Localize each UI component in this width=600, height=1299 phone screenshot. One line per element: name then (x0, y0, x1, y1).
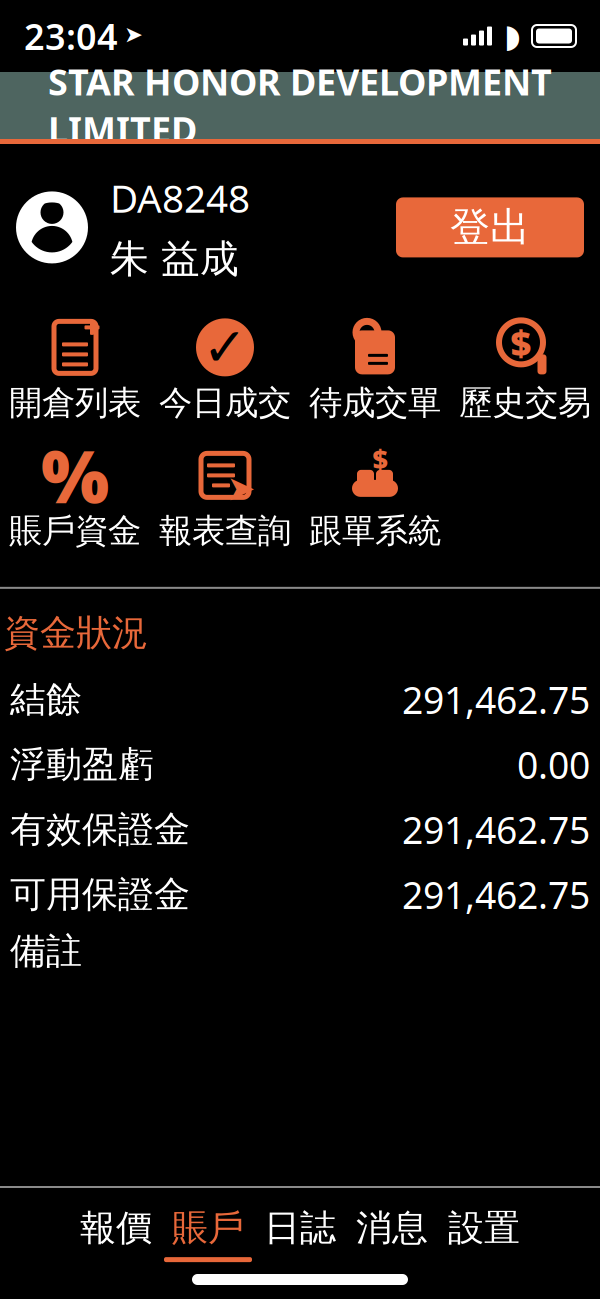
staticText: 開倉列表 (9, 382, 141, 423)
staticText: 報價 (80, 1206, 152, 1250)
staticText: 歷史交易 (459, 382, 591, 423)
staticText: 0.00 (517, 740, 590, 789)
staticText: 291,462.75 (402, 675, 590, 724)
staticText: 登出 (450, 203, 530, 252)
staticText: 資金狀況 (4, 611, 148, 655)
staticText: 今日成交 (159, 382, 291, 423)
button[interactable]: % (0, 435, 150, 563)
button[interactable]: ✓ (150, 307, 300, 435)
staticText: $ (372, 441, 387, 476)
staticText: 浮動盈虧 (10, 742, 154, 787)
staticText: 報表查詢 (159, 510, 291, 551)
staticText: 23:04 (24, 12, 118, 60)
staticText: 消息 (356, 1206, 428, 1250)
staticText: 跟單系統 (309, 510, 441, 551)
staticText: 朱 益成 (110, 235, 239, 283)
button[interactable]: $ (300, 435, 450, 563)
staticText: ➤ (124, 22, 143, 47)
staticText: 賬戶 (172, 1206, 244, 1250)
staticText: DA8248 (110, 172, 250, 223)
staticText: 291,462.75 (402, 805, 590, 854)
staticText: 備註 (10, 929, 82, 973)
staticText: ◗ (504, 18, 521, 54)
staticText: 291,462.75 (402, 870, 590, 919)
button[interactable]: 日誌 (254, 1198, 346, 1270)
staticText: 待成交單 (309, 382, 441, 423)
staticText: 賬戶資金 (9, 510, 141, 551)
staticText: 可用保證金 (10, 872, 190, 917)
button[interactable]: 設置 (438, 1198, 530, 1270)
staticText: 有效保證金 (10, 807, 190, 852)
staticText: % (41, 428, 109, 523)
staticText: ✓ (202, 317, 247, 378)
staticText: 日誌 (264, 1206, 336, 1250)
button[interactable]: 待成交單 (300, 307, 450, 435)
button[interactable]: $ (450, 307, 600, 435)
button[interactable]: 登出 (396, 197, 584, 257)
staticText: ➤ (226, 469, 255, 508)
button[interactable]: 賬戶 (162, 1198, 254, 1270)
staticText: $ (510, 318, 531, 366)
button[interactable]: 報價 (70, 1198, 162, 1270)
button[interactable]: ➤ (150, 435, 300, 563)
button[interactable]: 消息 (346, 1198, 438, 1270)
staticText: 設置 (448, 1206, 520, 1250)
staticText: STAR HONOR DEVELOPMENT LIMITED (48, 58, 552, 153)
staticText: 結餘 (10, 677, 82, 722)
button[interactable]: 開倉列表 (0, 307, 150, 435)
